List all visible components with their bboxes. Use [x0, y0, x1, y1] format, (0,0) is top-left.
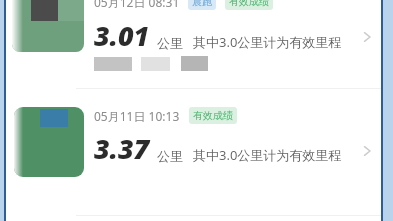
- button[interactable]: 查看跑步详情: [360, 143, 376, 159]
- button[interactable]: 查看跑步详情: [360, 29, 376, 45]
- staticText: 其中3.0公里计为有效里程: [193, 146, 342, 164]
- staticText: 有效成绩: [193, 109, 233, 122]
- staticText: 05月11日 10:13: [94, 108, 180, 124]
- staticText: 3.01: [94, 17, 150, 54]
- staticText: 公里: [157, 35, 183, 51]
- button[interactable]: 05月11日 10:13: [6, 89, 381, 215]
- staticText: 其中3.0公里计为有效里程: [193, 33, 342, 51]
- staticText: 3.37: [94, 130, 150, 167]
- button[interactable]: 有效成绩: [229, 0, 269, 8]
- staticText: 晨跑: [192, 0, 212, 8]
- staticText: 05月12日 08:31: [94, 0, 180, 10]
- staticText: 有效成绩: [229, 0, 269, 8]
- button[interactable]: 有效成绩: [193, 109, 233, 122]
- staticText: 公里: [157, 148, 183, 164]
- button[interactable]: 05月12日 08:31: [6, 0, 381, 88]
- button[interactable]: 晨跑: [192, 0, 212, 8]
